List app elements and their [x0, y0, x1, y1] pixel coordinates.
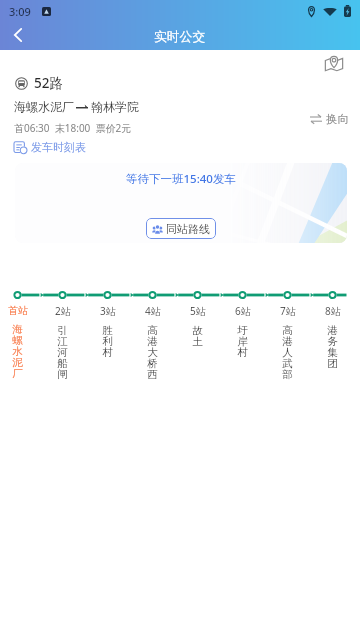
- button[interactable]: 2站: [40, 304, 85, 381]
- button[interactable]: 首站: [0, 304, 40, 380]
- staticText: 首站: [8, 304, 28, 317]
- staticText: 海螺水泥厂: [14, 99, 74, 114]
- staticText: 2站: [55, 304, 71, 318]
- button[interactable]: Map: [323, 52, 345, 74]
- button[interactable]: 8站: [310, 304, 355, 370]
- button[interactable]: 4站: [130, 304, 175, 381]
- staticText: 海螺水泥厂: [12, 323, 23, 380]
- staticText: 高港大桥西: [147, 324, 158, 381]
- staticText: 同站路线: [166, 222, 210, 236]
- staticText: 发车时刻表: [31, 140, 86, 154]
- staticText: 换向: [326, 112, 349, 126]
- staticText: 3站: [100, 304, 116, 318]
- button[interactable]: 6站: [220, 304, 265, 359]
- button[interactable]: 3站: [85, 304, 130, 359]
- staticText: 港务集团: [327, 324, 338, 370]
- staticText: 故土: [192, 324, 203, 348]
- staticText: 4站: [145, 304, 161, 318]
- staticText: 首06:30 末18:00 票价2元: [14, 121, 132, 135]
- staticText: 6站: [235, 304, 251, 318]
- staticText: 翰林学院: [91, 99, 139, 114]
- staticText: 5站: [190, 304, 206, 318]
- staticText: 胜利村: [102, 324, 113, 359]
- button[interactable]: Back: [5, 22, 31, 48]
- staticText: 3:09: [9, 4, 31, 19]
- button[interactable]: 同站路线: [146, 218, 216, 239]
- staticText: 圩岸村: [237, 324, 248, 359]
- staticText: 等待下一班15:40发车: [126, 171, 236, 187]
- staticText: 引江河船闸: [57, 324, 68, 381]
- button[interactable]: 7站: [265, 304, 310, 381]
- staticText: 8站: [325, 304, 341, 318]
- button[interactable]: 发车时刻表: [14, 140, 86, 154]
- staticText: 52路: [34, 74, 63, 92]
- button[interactable]: 5站: [175, 304, 220, 348]
- staticText: 实时公交: [154, 29, 206, 45]
- button[interactable]: 换向: [310, 112, 349, 126]
- staticText: 7站: [280, 304, 296, 318]
- staticText: 高港人武部: [282, 324, 293, 381]
